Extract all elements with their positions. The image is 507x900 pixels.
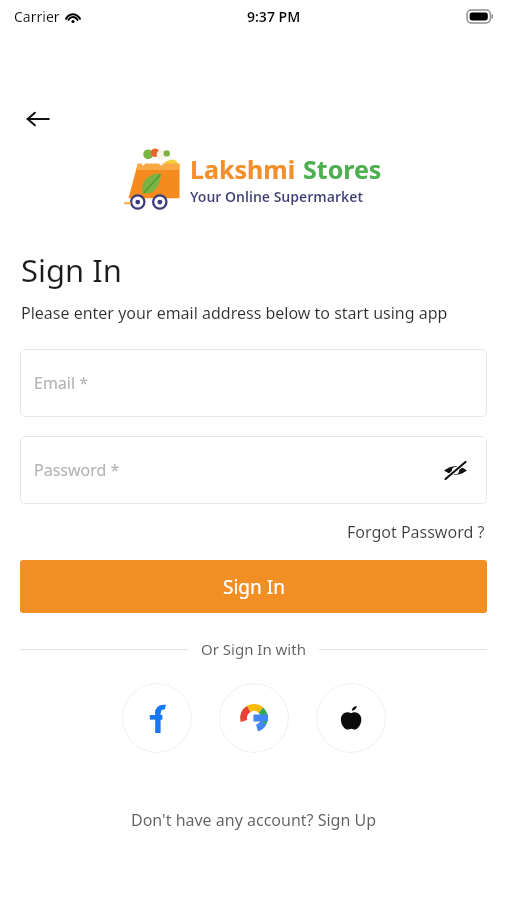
staticText: Password *: [34, 459, 120, 481]
button[interactable]: Email *: [20, 349, 487, 417]
staticText: Or Sign In with: [201, 639, 306, 659]
button[interactable]: Back: [16, 97, 60, 141]
button[interactable]: Password *: [20, 436, 487, 504]
button[interactable]: Sign in with Facebook: [122, 683, 192, 753]
staticText: Don't have any account? Sign Up: [131, 809, 376, 831]
staticText: Lakshmi: [190, 152, 296, 186]
button[interactable]: Sign in with Google: [219, 683, 289, 753]
button[interactable]: Forgot Password ?: [345, 517, 487, 547]
button[interactable]: Don't have any account? Sign Up: [123, 805, 384, 835]
staticText: Sign In: [21, 249, 122, 291]
staticText: Carrier: [14, 7, 60, 26]
staticText: Forgot Password ?: [347, 521, 485, 543]
staticText: Please enter your email address below to…: [21, 302, 448, 324]
staticText: Email *: [34, 372, 89, 394]
staticText: Your Online Supermarket: [190, 187, 364, 206]
button[interactable]: Sign in with Apple: [316, 683, 386, 753]
staticText: Sign In: [223, 574, 285, 600]
staticText: Stores: [303, 152, 382, 186]
staticText: 9:37 PM: [247, 7, 301, 26]
button[interactable]: Show password: [437, 452, 473, 488]
button[interactable]: Sign In: [20, 560, 487, 613]
